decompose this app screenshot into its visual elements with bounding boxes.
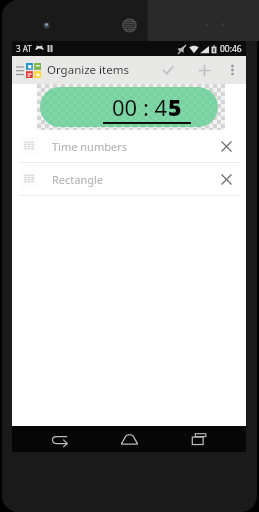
button[interactable]: App icon (26, 63, 41, 78)
staticText: Organize items (47, 62, 129, 78)
button[interactable]: Remove Time numbers (212, 132, 240, 160)
staticText: 5 (168, 91, 182, 122)
button[interactable]: Done (153, 56, 183, 84)
staticText: Rectangle (52, 172, 104, 187)
button[interactable]: Rectangle (12, 163, 246, 195)
staticText: 3 AT (16, 43, 32, 54)
button[interactable]: Open navigation drawer (15, 58, 25, 82)
button[interactable]: Remove Rectangle (212, 165, 240, 193)
button[interactable]: Home (106, 426, 152, 452)
button[interactable]: Time numbers (12, 130, 246, 162)
button[interactable]: More options (221, 56, 243, 84)
button[interactable]: Add item (189, 56, 219, 84)
button[interactable]: Recent apps (176, 426, 222, 452)
button[interactable]: Back (36, 426, 82, 452)
button[interactable]: 00 : 4 (12, 84, 246, 130)
staticText: 00:46 (220, 43, 242, 55)
staticText: 00 : 4 (112, 92, 168, 122)
staticText: Time numbers (52, 139, 127, 154)
